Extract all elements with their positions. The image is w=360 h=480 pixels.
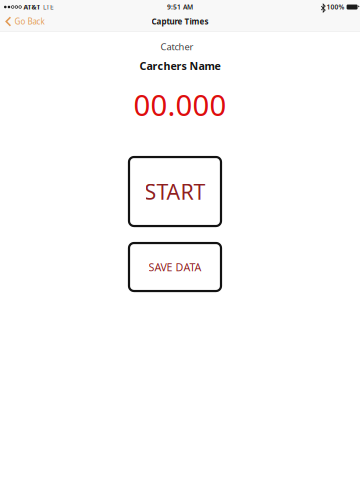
staticText: 00.000 — [133, 85, 226, 124]
staticText: Capture Times — [151, 16, 208, 27]
staticText: Go Back — [15, 16, 45, 27]
button[interactable]: Go Back — [0, 14, 52, 29]
button[interactable]: SAVE DATA — [129, 243, 221, 291]
staticText: 100% — [327, 3, 345, 11]
staticText: START — [144, 177, 205, 206]
button[interactable]: START — [129, 157, 221, 226]
staticText: Catcher — [160, 40, 193, 53]
staticText: SAVE DATA — [148, 260, 201, 274]
staticText: LTE — [43, 3, 54, 11]
staticText: AT&T — [23, 3, 40, 11]
staticText: Carchers Name — [139, 59, 220, 73]
staticText: 9:51 AM — [167, 3, 193, 11]
